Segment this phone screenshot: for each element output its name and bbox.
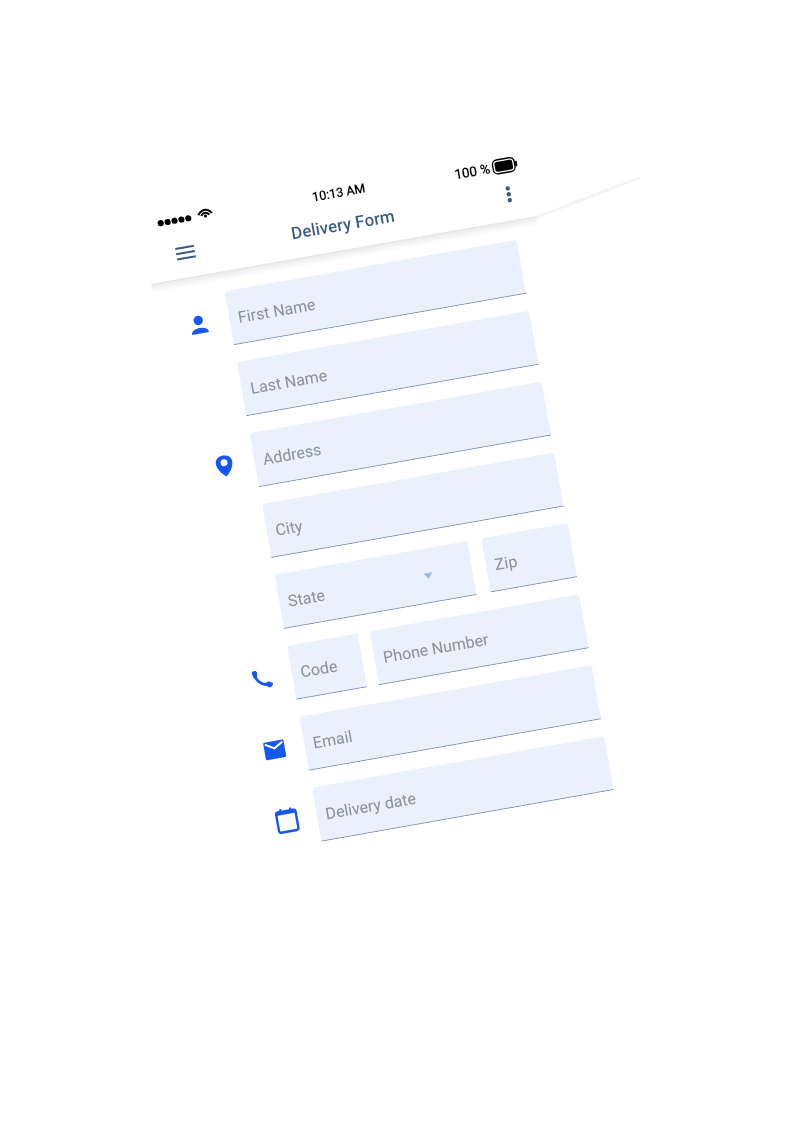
staticText: First Name bbox=[236, 295, 317, 327]
button[interactable]: City bbox=[262, 452, 564, 558]
other: Location bbox=[211, 452, 238, 480]
other: Date bbox=[273, 805, 301, 833]
staticText: 10:13 AM bbox=[311, 180, 367, 204]
other: Phone bbox=[248, 664, 276, 691]
button[interactable]: State bbox=[274, 541, 477, 629]
staticText: Address bbox=[261, 440, 323, 469]
button[interactable]: More options bbox=[501, 185, 516, 203]
staticText: Zip bbox=[493, 551, 519, 574]
button[interactable]: Delivery date bbox=[312, 736, 614, 842]
staticText: Email bbox=[311, 727, 354, 752]
staticText: State bbox=[286, 585, 327, 611]
other: Person bbox=[186, 310, 213, 338]
staticText: Delivery date bbox=[324, 789, 418, 823]
button[interactable]: Email bbox=[299, 665, 601, 771]
staticText: Last Name bbox=[249, 366, 329, 398]
button[interactable]: First Name bbox=[224, 240, 526, 345]
staticText: Code bbox=[299, 656, 340, 681]
button[interactable]: Zip bbox=[481, 523, 577, 592]
button[interactable]: Last Name bbox=[237, 310, 539, 416]
staticText: City bbox=[274, 516, 305, 540]
button[interactable]: Phone Number bbox=[369, 594, 589, 685]
other: Email bbox=[260, 734, 288, 762]
button[interactable]: Open navigation menu bbox=[175, 245, 196, 261]
button[interactable]: Code bbox=[287, 633, 367, 700]
button[interactable]: Address bbox=[249, 381, 551, 487]
staticText: 100 % bbox=[453, 160, 491, 182]
staticText: Phone Number bbox=[382, 630, 490, 667]
staticText: Delivery Form bbox=[290, 206, 396, 243]
